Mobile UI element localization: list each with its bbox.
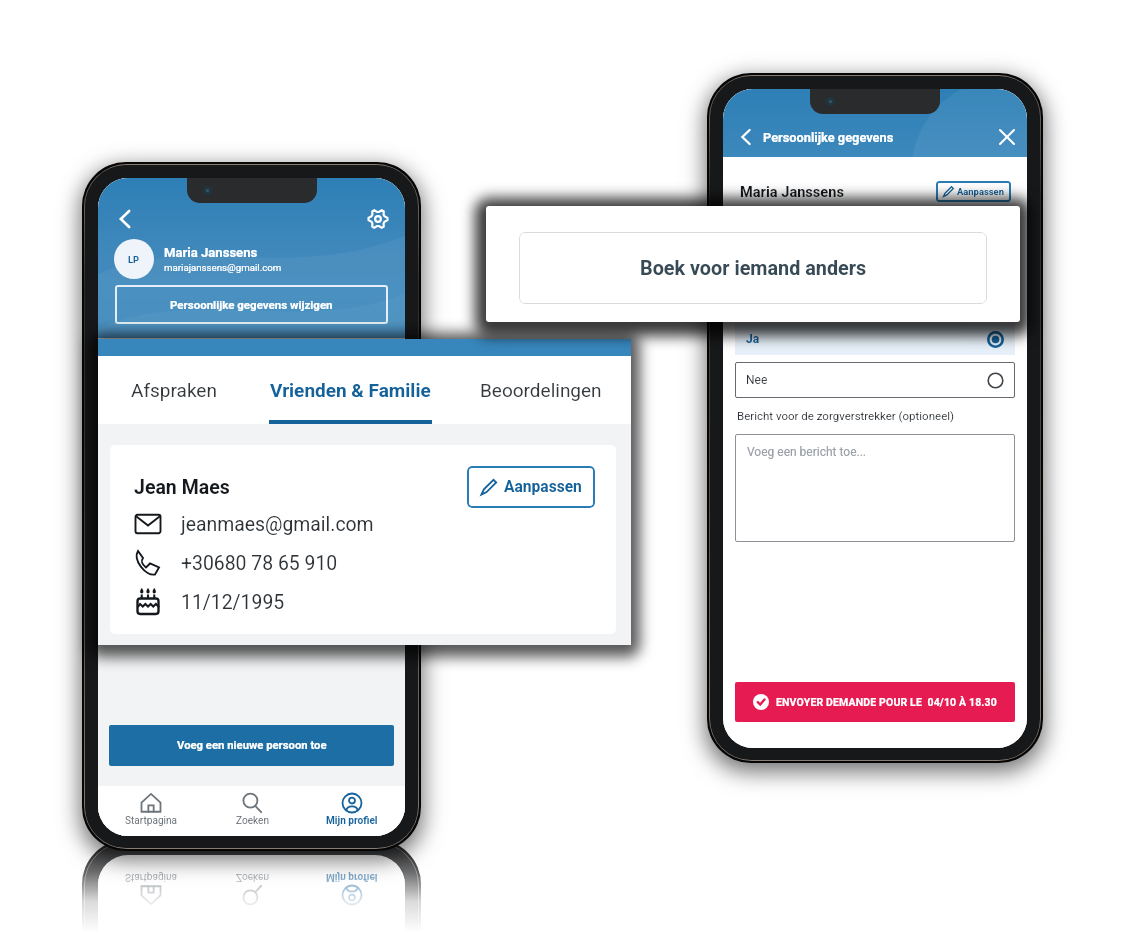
button[interactable]: Voeg een nieuwe persoon toe xyxy=(109,725,394,766)
staticText: Afspraken xyxy=(131,379,217,401)
staticText: Nee xyxy=(746,373,768,387)
staticText: Startpagina xyxy=(125,815,178,827)
button[interactable]: Startpagina xyxy=(103,791,199,827)
button[interactable]: Back xyxy=(110,204,140,234)
staticText: Bericht voor de zorgverstrekker (optione… xyxy=(737,409,955,422)
staticText: Persoonlijke gegevens xyxy=(763,130,894,145)
staticText: Beoordelingen xyxy=(480,379,602,401)
staticText: Voeg een nieuwe persoon toe xyxy=(177,739,327,752)
staticText: Zoeken xyxy=(236,871,269,883)
staticText: Mijn profiel xyxy=(326,871,378,883)
button[interactable]: Persoonlijke gegevens wijzigen xyxy=(115,285,388,324)
staticText: Mijn profiel xyxy=(326,815,378,827)
staticText: jeanmaes@gmail.com xyxy=(181,513,374,536)
staticText: Aanpassen xyxy=(504,478,582,496)
staticText: ENVOYER DEMANDE POUR LE 04/10 À 18.30 xyxy=(776,696,997,708)
staticText: +30680 78 65 910 xyxy=(181,552,338,575)
button[interactable]: Boek voor iemand anders xyxy=(519,232,987,304)
button[interactable]: Beoordelingen xyxy=(450,356,631,424)
button[interactable]: Ja xyxy=(735,323,1015,355)
staticText: mariajanssens@gmail.com xyxy=(164,262,282,273)
button[interactable]: ENVOYER DEMANDE POUR LE 04/10 À 18.30 xyxy=(735,682,1015,722)
staticText: LP xyxy=(128,254,140,265)
button[interactable]: Vrienden & Familie xyxy=(250,356,450,424)
staticText: Voeg een bericht toe... xyxy=(747,445,867,459)
staticText: 11/12/1995 xyxy=(181,591,285,614)
button[interactable]: Aanpassen xyxy=(467,466,595,508)
button[interactable]: Voeg een bericht toe... xyxy=(735,434,1015,542)
staticText: Boek voor iemand anders xyxy=(640,257,867,280)
staticText: Jean Maes xyxy=(134,476,230,499)
button[interactable]: Afspraken xyxy=(98,356,250,424)
button[interactable]: Close xyxy=(995,125,1019,149)
button[interactable]: Zoeken xyxy=(204,791,300,827)
staticText: Startpagina xyxy=(125,871,178,883)
staticText: Vrienden & Familie xyxy=(270,379,431,401)
staticText: Zoeken xyxy=(236,815,269,827)
staticText: Maria Janssens xyxy=(740,183,844,200)
button[interactable]: Persoonlijke gegevens xyxy=(733,124,894,150)
button[interactable]: Settings xyxy=(363,204,393,234)
button[interactable]: Nee xyxy=(735,362,1015,398)
button[interactable]: Mijn profiel xyxy=(304,791,400,827)
button[interactable]: Aanpassen xyxy=(936,181,1011,202)
staticText: Maria Janssens xyxy=(164,245,258,260)
staticText: Ja xyxy=(746,332,760,346)
staticText: Aanpassen xyxy=(957,186,1004,197)
staticText: Persoonlijke gegevens wijzigen xyxy=(170,298,333,311)
